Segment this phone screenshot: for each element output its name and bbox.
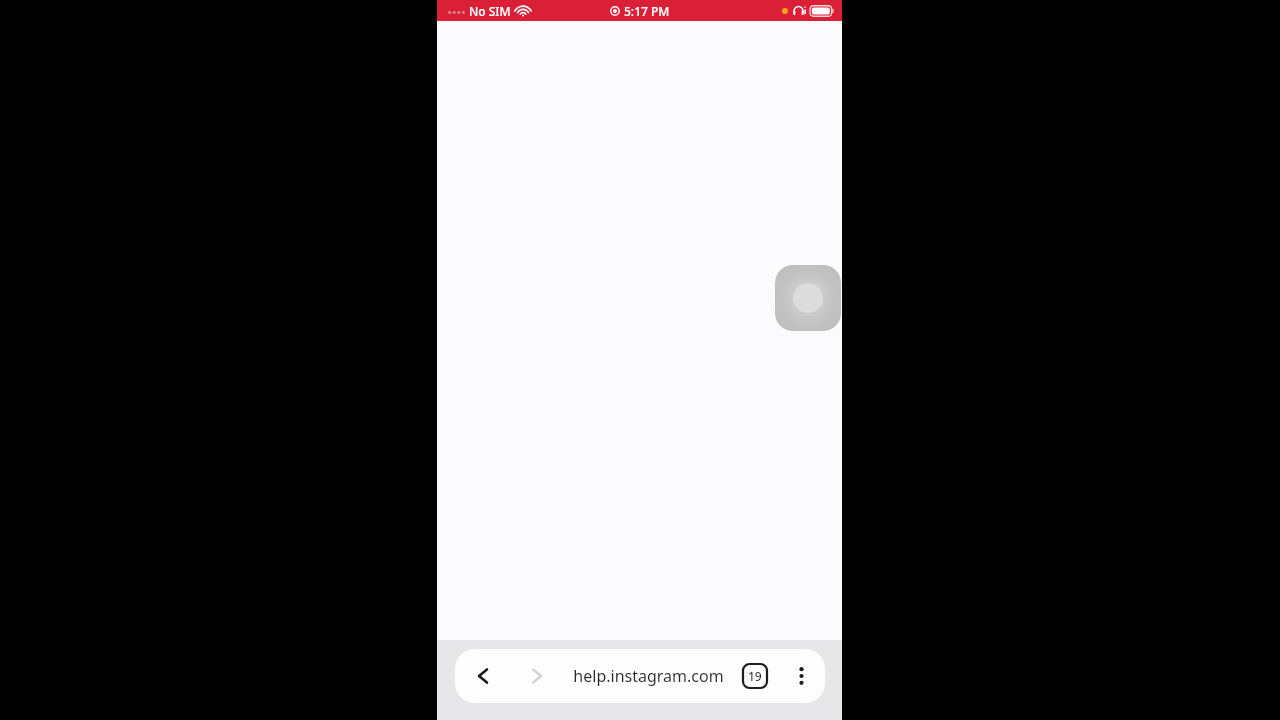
- staticText: 5:17 PM: [624, 3, 670, 19]
- button[interactable]: Tabs, 19 open: [733, 649, 777, 703]
- button[interactable]: Forward: [511, 649, 563, 703]
- staticText: help.instagram.com: [573, 665, 724, 687]
- button[interactable]: Back: [455, 649, 511, 703]
- staticText: 19: [748, 668, 762, 684]
- button[interactable]: help.instagram.com: [563, 649, 733, 703]
- button[interactable]: More options: [777, 649, 825, 703]
- staticText: No SIM: [469, 3, 511, 19]
